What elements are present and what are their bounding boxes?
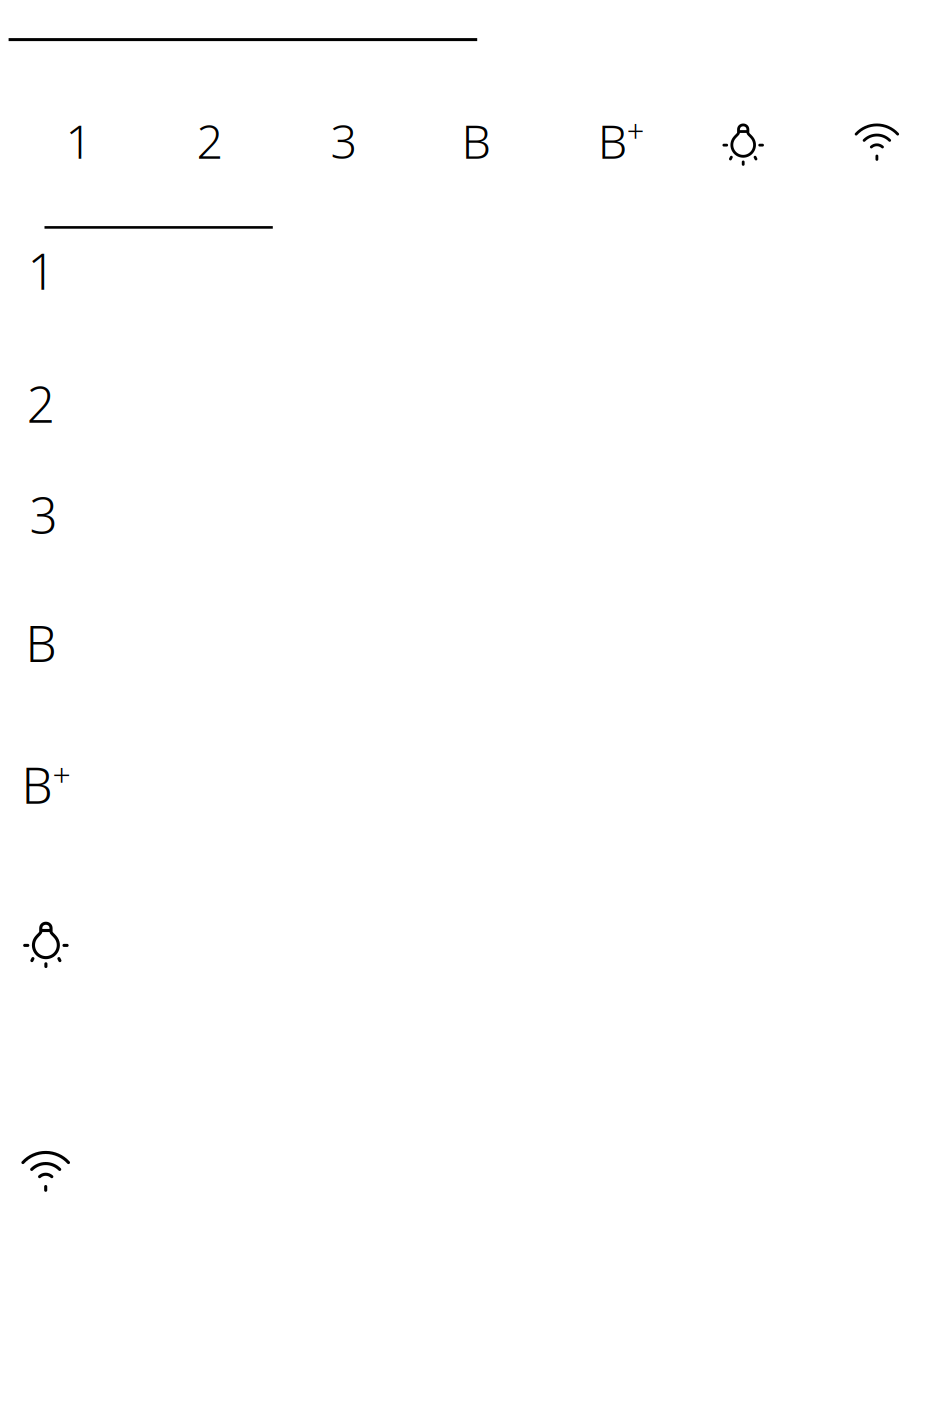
button[interactable]: Wi-Fi <box>851 120 903 164</box>
button[interactable]: Light <box>17 916 74 976</box>
staticText: B+ <box>21 752 70 817</box>
staticText: 2 <box>27 371 55 436</box>
button[interactable]: Column 2 <box>196 110 223 172</box>
button[interactable]: Column B plus <box>598 110 645 172</box>
staticText: B <box>25 610 56 675</box>
button[interactable]: Row 3 <box>29 481 57 547</box>
button[interactable]: Row 2 <box>27 371 55 436</box>
staticText: 2 <box>196 110 223 172</box>
button[interactable]: Row B <box>25 610 56 675</box>
staticText: 1 <box>65 110 92 172</box>
staticText: B+ <box>598 110 645 172</box>
button[interactable]: Light <box>717 118 769 173</box>
button[interactable]: Column B <box>461 110 490 172</box>
button[interactable]: Column 3 <box>330 110 357 172</box>
button[interactable]: Row B plus <box>21 752 70 817</box>
staticText: 1 <box>27 238 55 303</box>
button[interactable]: Column 1 <box>65 110 92 172</box>
button[interactable]: Row 1 <box>27 238 55 303</box>
staticText: 3 <box>29 481 57 547</box>
button[interactable]: Wi-Fi <box>17 1147 74 1195</box>
staticText: B <box>461 110 490 172</box>
staticText: 3 <box>330 110 357 172</box>
